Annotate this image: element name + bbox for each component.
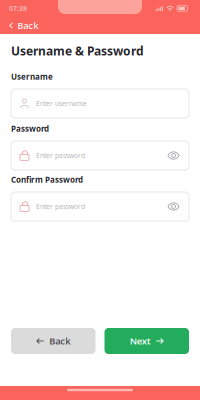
staticText: Username & Password — [11, 43, 144, 59]
staticText: Password — [11, 123, 49, 134]
button[interactable]: Show password — [167, 200, 180, 213]
button[interactable]: Next — [104, 328, 189, 354]
staticText: Confirm Password — [11, 174, 83, 185]
staticText: 07:38 — [9, 4, 27, 13]
button[interactable]: Show password — [167, 149, 180, 162]
staticText: Enter password — [36, 151, 85, 160]
button[interactable]: Enter password — [11, 192, 189, 221]
button[interactable]: Back — [0, 17, 200, 34]
staticText: Back — [49, 335, 70, 347]
staticText: Next — [130, 335, 151, 347]
button[interactable]: Enter username — [11, 89, 189, 118]
staticText: Enter username — [36, 99, 87, 108]
button[interactable]: Back — [11, 328, 95, 354]
staticText: Back — [17, 19, 38, 32]
button[interactable]: Enter password — [11, 141, 189, 170]
staticText: Username — [11, 71, 53, 82]
staticText: Enter password — [36, 202, 85, 211]
